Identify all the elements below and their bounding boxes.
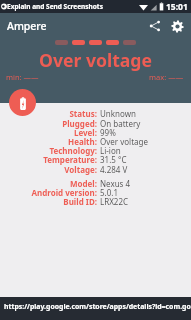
button[interactable]: Battery status xyxy=(9,89,36,116)
staticText: 4.284 V xyxy=(100,164,128,175)
staticText: Nexus 4 xyxy=(100,178,131,189)
staticText: Status: xyxy=(69,108,97,119)
staticText: 99% xyxy=(100,127,116,138)
staticText: Over voltage xyxy=(39,48,152,72)
button[interactable]: https://play.google.com/store/apps/detai… xyxy=(0,297,191,320)
staticText: Build ID: xyxy=(63,196,97,207)
staticText: max: —— xyxy=(149,72,184,82)
staticText: min: —— xyxy=(6,72,39,82)
staticText: Explain and Send Screenshots xyxy=(7,2,103,11)
staticText: 31.5 °C xyxy=(100,154,127,165)
staticText: Unknown xyxy=(100,108,136,119)
staticText: Technology: xyxy=(49,145,97,156)
staticText: 5.0.1 xyxy=(100,187,119,198)
staticText: Over voltage xyxy=(100,136,148,147)
staticText: Health: xyxy=(68,136,97,147)
staticText: LRX22C xyxy=(100,196,129,207)
staticText: 15:01 xyxy=(166,1,188,13)
staticText: Ampere xyxy=(7,19,47,33)
staticText: Android version: xyxy=(31,187,97,198)
staticText: Model: xyxy=(69,178,97,189)
staticText: Voltage: xyxy=(64,164,97,175)
staticText: Plugged: xyxy=(62,118,97,129)
staticText: Temperature: xyxy=(43,154,97,165)
staticText: https://play.google.com/store/apps/detai… xyxy=(4,302,191,311)
staticText: Li-ion xyxy=(100,145,121,156)
button[interactable]: Share xyxy=(145,16,165,36)
staticText: On battery xyxy=(100,118,141,129)
staticText: Level: xyxy=(73,127,97,138)
button[interactable]: Settings xyxy=(167,16,187,36)
